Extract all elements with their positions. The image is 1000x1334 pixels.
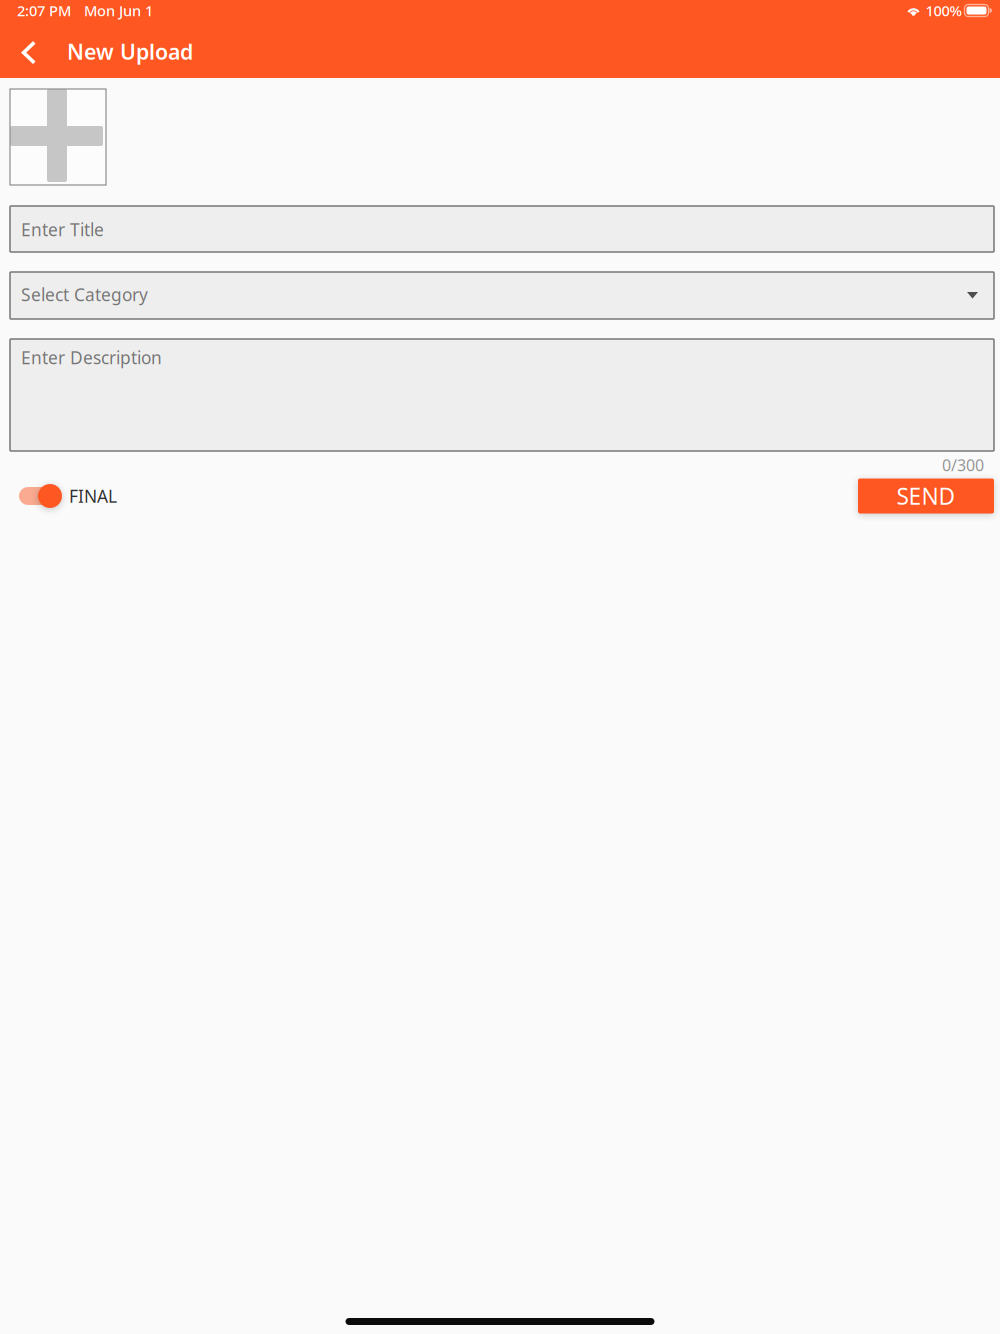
- button[interactable]: FINAL: [10, 483, 117, 509]
- staticText: Enter Description: [21, 346, 162, 369]
- staticText: Mon Jun 1: [84, 1, 153, 20]
- staticText: FINAL: [69, 484, 117, 507]
- staticText: 0/300: [942, 454, 984, 476]
- staticText: Select Category: [21, 283, 148, 306]
- button[interactable]: Select Category: [10, 272, 994, 319]
- button[interactable]: SEND: [858, 478, 994, 513]
- button[interactable]: Enter Title: [10, 206, 994, 252]
- button[interactable]: Back: [7, 27, 53, 75]
- staticText: New Upload: [67, 37, 193, 66]
- button[interactable]: Enter Description: [10, 339, 994, 451]
- button[interactable]: Add photo: [10, 89, 106, 185]
- staticText: Enter Title: [21, 218, 104, 241]
- staticText: 100%: [925, 1, 961, 20]
- staticText: SEND: [896, 481, 955, 511]
- staticText: 2:07 PM: [17, 1, 71, 20]
